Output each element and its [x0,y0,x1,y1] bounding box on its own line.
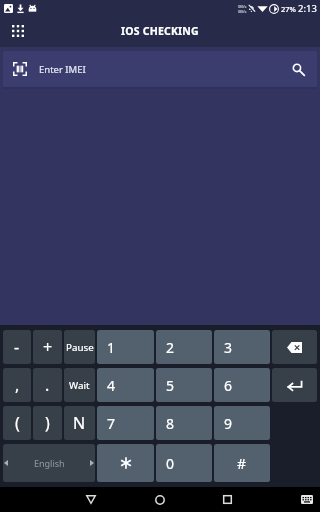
button[interactable]: ) [33,406,62,440]
staticText: + [43,336,53,358]
staticText: 27% [281,4,296,14]
button[interactable]: Home [143,487,176,512]
staticText: ( [15,412,20,434]
button[interactable]: , [3,368,31,402]
staticText: 5 [166,376,175,395]
staticText: 8 [166,414,175,433]
staticText: English [34,457,65,469]
button[interactable]: 8 [156,406,212,440]
button[interactable]: N [64,406,95,440]
staticText: , [15,374,20,396]
button[interactable]: 1 [97,330,154,364]
staticText: 2:13 [298,2,317,15]
button[interactable]: Backspace [272,330,317,364]
button[interactable]: ( [3,406,31,440]
button[interactable]: Search [280,51,317,87]
button[interactable]: English [3,444,95,482]
staticText: Wait [69,379,90,392]
button[interactable]: Recent apps [211,487,244,512]
staticText: 3 [224,338,233,357]
button[interactable]: 7 [97,406,154,440]
staticText: ) [45,412,50,434]
button[interactable]: Apps menu [6,19,30,43]
staticText: . [45,374,50,396]
button[interactable]: - [3,330,31,364]
button[interactable]: 3 [214,330,270,364]
button[interactable]: Enter [272,368,317,402]
button[interactable]: . [33,368,62,402]
button[interactable]: 2 [156,330,212,364]
staticText: # [237,454,247,473]
staticText: Enter IMEI [39,63,86,76]
staticText: 1 [107,338,116,357]
button[interactable]: 5 [156,368,212,402]
staticText: 2 [166,338,175,357]
staticText: Pause [66,341,94,354]
button[interactable] [97,444,154,482]
button[interactable]: 4 [97,368,154,402]
staticText: N [73,412,86,434]
button[interactable]: Pause [64,330,95,364]
staticText: 6 [224,376,233,395]
staticText: 0B/s [238,4,247,9]
button[interactable]: Back [74,487,107,512]
staticText: 9 [224,414,233,433]
staticText: 0B/s [238,9,247,14]
staticText: 4 [107,376,116,395]
staticText: 0 [166,454,175,473]
staticText: - [14,336,20,358]
staticText: 7 [107,414,116,433]
button[interactable]: + [33,330,62,364]
button[interactable]: 9 [214,406,270,440]
button[interactable]: 6 [214,368,270,402]
button[interactable]: # [214,444,270,482]
staticText: IOS CHECKING [121,24,199,38]
button[interactable]: Switch keyboard [290,487,320,512]
button[interactable]: Wait [64,368,95,402]
button[interactable]: 0 [156,444,212,482]
button[interactable]: Enter IMEI [3,51,317,87]
